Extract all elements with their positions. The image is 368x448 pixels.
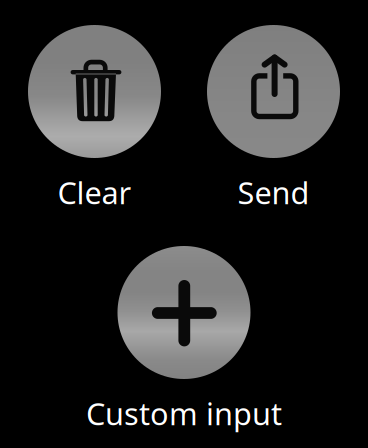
staticText: Custom input <box>86 393 282 434</box>
button[interactable]: Clear <box>28 25 161 213</box>
button[interactable]: Send <box>207 25 340 213</box>
button[interactable]: Custom input <box>86 246 282 434</box>
staticText: Clear <box>57 172 131 213</box>
staticText: Send <box>237 172 309 213</box>
